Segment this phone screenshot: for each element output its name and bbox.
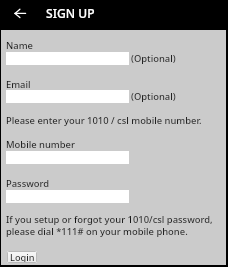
staticText: Login [10, 251, 35, 263]
staticText: SIGN UP [46, 5, 95, 21]
button[interactable]: Login [7, 251, 37, 263]
staticText: Name [6, 39, 33, 52]
staticText: please dial *111# on your mobile phone. [6, 225, 188, 238]
staticText: Please enter your 1010 / csl mobile numb… [6, 114, 202, 127]
staticText: (Optional) [131, 52, 176, 65]
staticText: If you setup or forgot your 1010/csl pas… [6, 213, 213, 226]
staticText: Mobile number [6, 138, 75, 151]
staticText: Password [6, 177, 50, 190]
staticText: (Optional) [131, 90, 176, 103]
staticText: Email [6, 78, 31, 91]
button[interactable]: Navigate up [7, 2, 30, 25]
